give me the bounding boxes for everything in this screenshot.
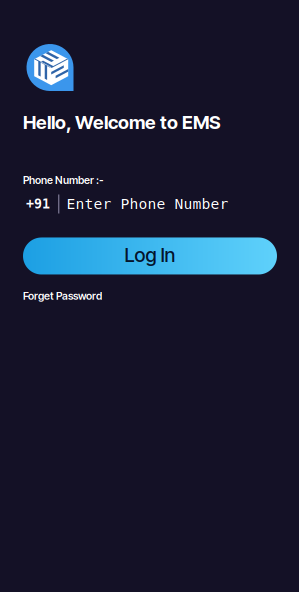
staticText: Forget Password xyxy=(23,289,102,302)
staticText: Enter Phone Number xyxy=(66,195,228,213)
button[interactable]: Forget Password xyxy=(23,289,102,302)
staticText: Log In xyxy=(124,243,175,267)
button[interactable]: Log In xyxy=(23,237,277,274)
button[interactable]: +91 xyxy=(26,194,273,213)
staticText: Hello, Welcome to EMS xyxy=(23,111,221,134)
staticText: +91 xyxy=(26,196,50,212)
staticText: Phone Number :- xyxy=(23,174,104,186)
